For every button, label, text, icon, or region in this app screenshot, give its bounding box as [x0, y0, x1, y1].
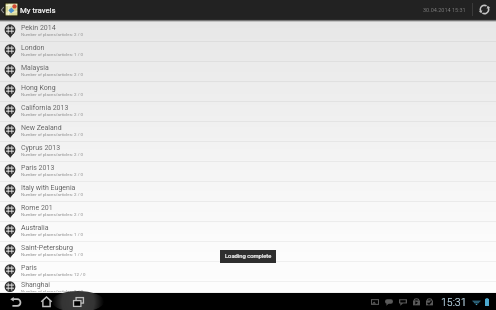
- staticText: Number of places/articles: 2 / 0: [21, 289, 84, 292]
- staticText: Cyprus 2013: [21, 144, 61, 152]
- button[interactable]: Australia: [0, 222, 496, 242]
- staticText: Italy with Eugenia: [21, 184, 76, 192]
- staticText: Malaysia: [21, 64, 49, 72]
- button[interactable]: Up: [0, 0, 5, 19]
- staticText: Number of places/articles: 2 / 0: [21, 112, 84, 117]
- staticText: Number of places/articles: 1 / 0: [21, 232, 84, 237]
- staticText: Australia: [21, 224, 49, 232]
- staticText: Saint-Petersburg: [21, 244, 73, 252]
- button[interactable]: Home: [31, 293, 62, 310]
- staticText: Number of places/articles: 2 / 0: [21, 92, 84, 97]
- button[interactable]: London: [0, 42, 496, 62]
- staticText: California 2013: [21, 104, 69, 112]
- button[interactable]: Cyprus 2013: [0, 142, 496, 162]
- staticText: Number of places/articles: 1 / 0: [21, 252, 84, 257]
- staticText: Pekin 2014: [21, 24, 56, 32]
- staticText: Hong Kong: [21, 84, 56, 92]
- staticText: Number of places/articles: 2 / 0: [21, 132, 84, 137]
- staticText: Number of places/articles: 2 / 0: [21, 212, 84, 217]
- button[interactable]: Back: [0, 293, 31, 310]
- staticText: Loading complete: [225, 253, 272, 260]
- button[interactable]: Italy with Eugenia: [0, 182, 496, 202]
- button[interactable]: Pekin 2014: [0, 22, 496, 42]
- button[interactable]: Rome 201: [0, 202, 496, 222]
- staticText: London: [21, 44, 45, 52]
- staticText: Number of places/articles: 2 / 0: [21, 192, 84, 197]
- staticText: 30.04.2014 15:31: [423, 7, 466, 13]
- staticText: Number of places/articles: 2 / 0: [21, 152, 84, 157]
- staticText: Number of places/articles: 2 / 0: [21, 72, 84, 77]
- staticText: Number of places/articles: 1 / 0: [21, 52, 84, 57]
- staticText: Number of places/articles: 12 / 0: [21, 272, 86, 277]
- button[interactable]: Hong Kong: [0, 82, 496, 102]
- staticText: New Zealand: [21, 124, 62, 132]
- button[interactable]: Recent apps: [62, 293, 94, 310]
- button[interactable]: Paris 2013: [0, 162, 496, 182]
- staticText: Number of places/articles: 2 / 0: [21, 32, 84, 37]
- button[interactable]: Saint-Petersburg: [0, 242, 496, 262]
- staticText: Paris 2013: [21, 164, 55, 172]
- staticText: Shanghai: [21, 281, 50, 289]
- staticText: 15:31: [441, 296, 467, 308]
- staticText: My travels: [20, 6, 56, 15]
- button[interactable]: Refresh: [473, 0, 496, 19]
- button[interactable]: New Zealand: [0, 122, 496, 142]
- staticText: Paris: [21, 264, 37, 272]
- button[interactable]: Malaysia: [0, 62, 496, 82]
- staticText: Rome 201: [21, 204, 53, 212]
- button[interactable]: Shanghai: [0, 282, 496, 293]
- button[interactable]: Paris: [0, 262, 496, 282]
- button[interactable]: California 2013: [0, 102, 496, 122]
- staticText: Number of places/articles: 2 / 0: [21, 172, 84, 177]
